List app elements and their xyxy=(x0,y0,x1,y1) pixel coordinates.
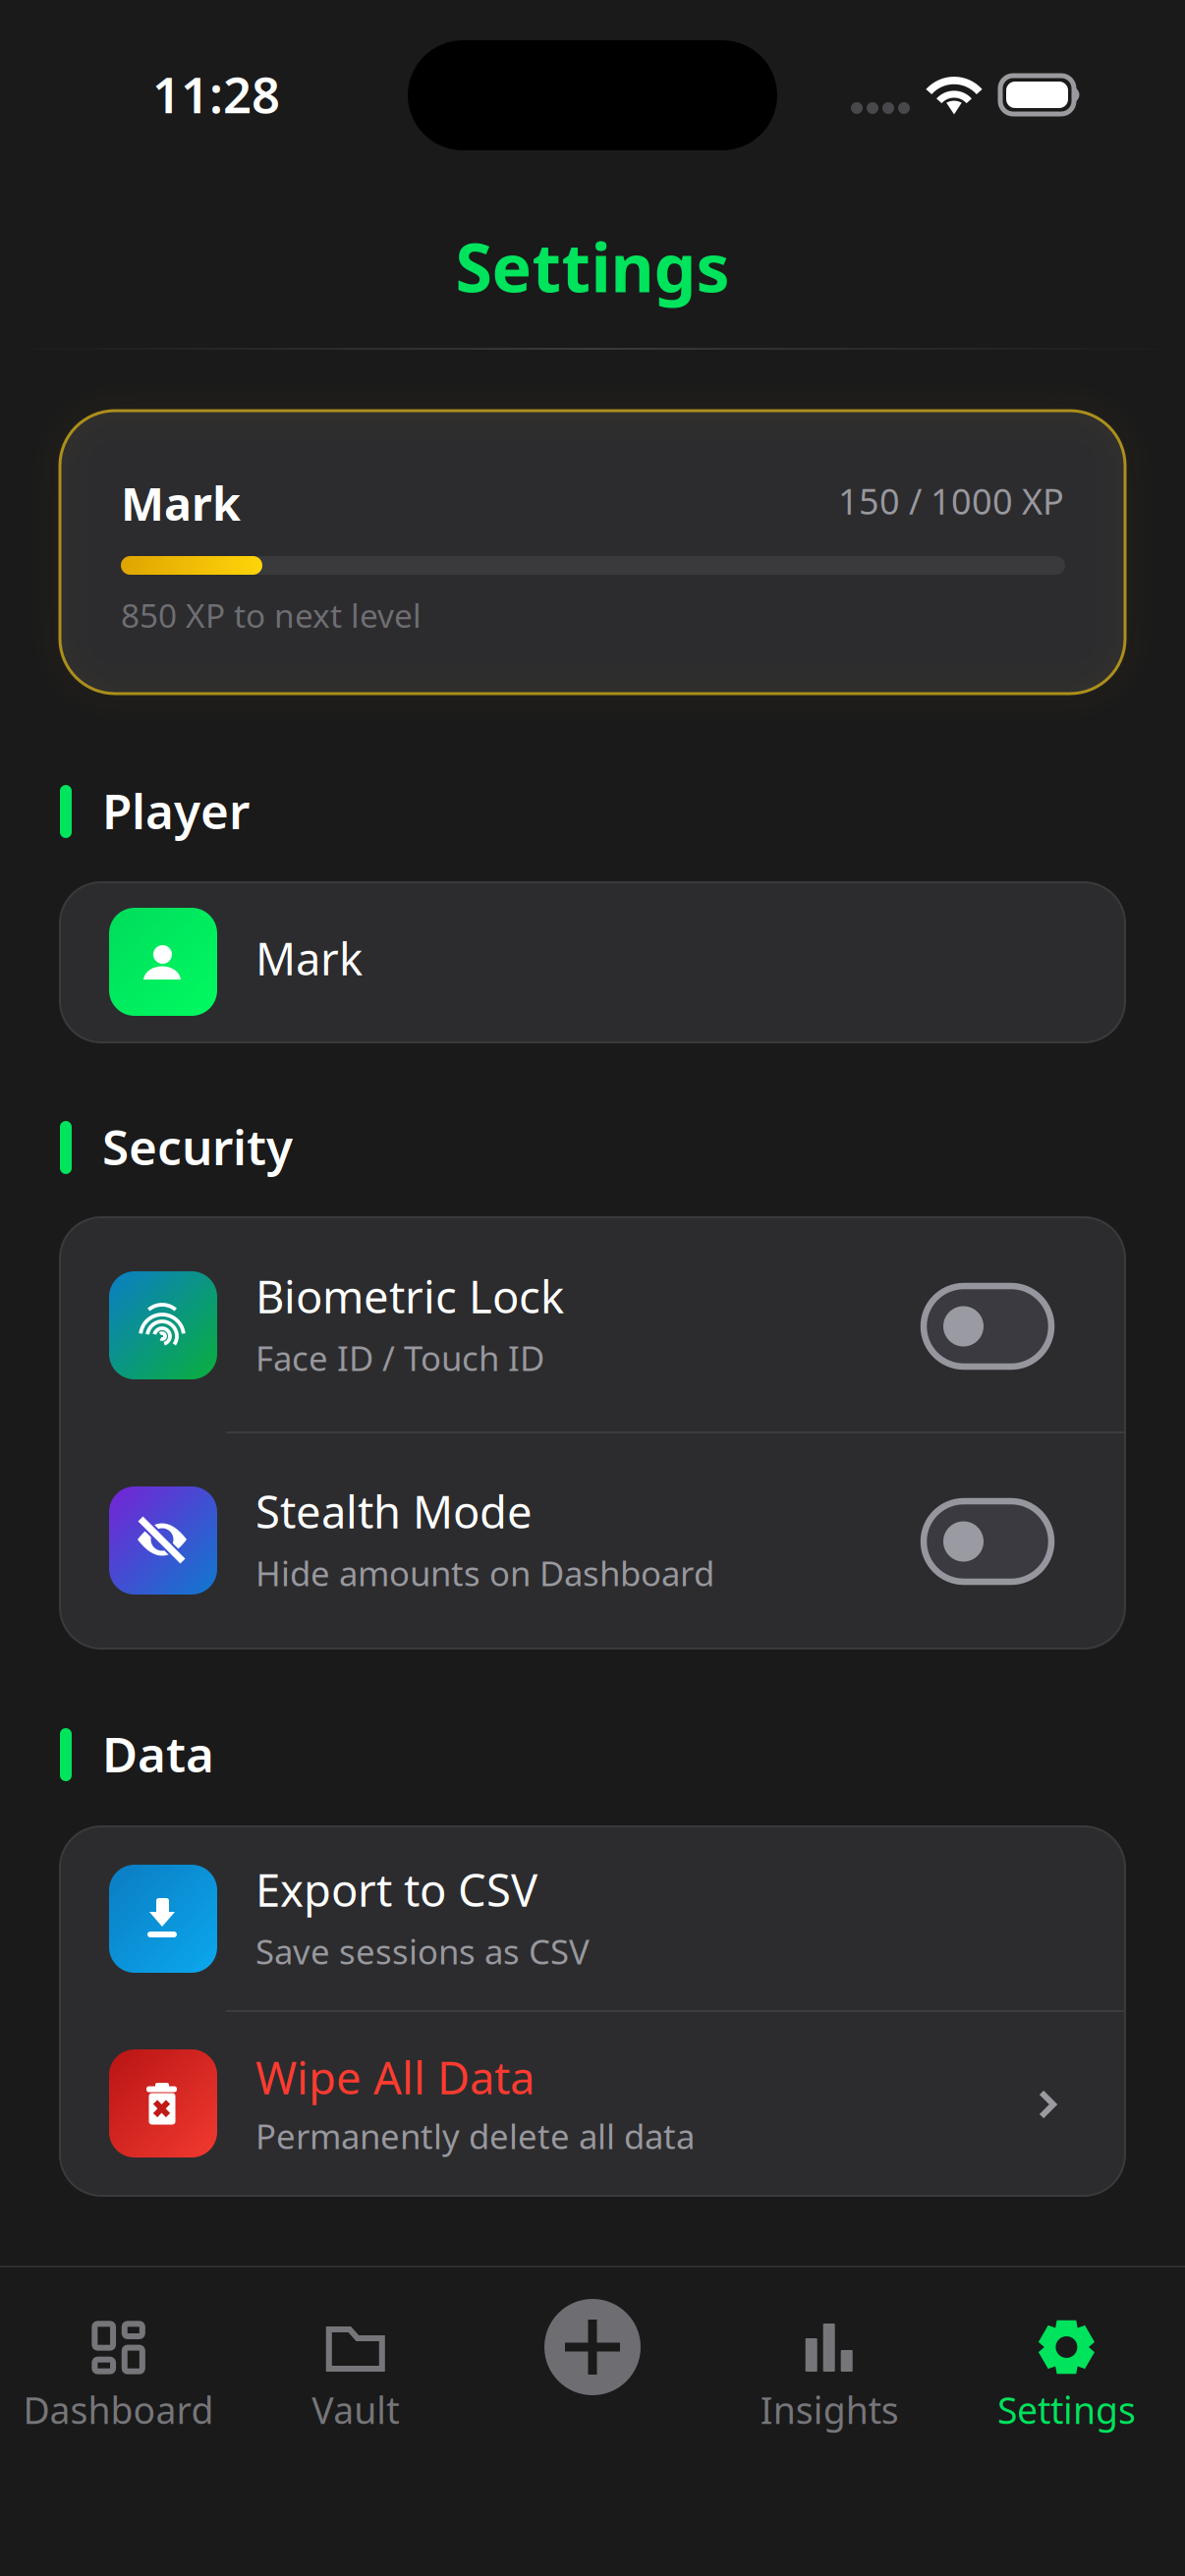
staticText: Insights xyxy=(760,2385,899,2434)
staticText: 11:28 xyxy=(152,61,280,127)
staticText: 850 XP to next level xyxy=(121,593,422,637)
staticText: Security xyxy=(102,1114,293,1178)
button[interactable]: Export to CSV xyxy=(60,1826,1125,2011)
staticText: Settings xyxy=(455,222,730,311)
button[interactable]: Settings xyxy=(948,2299,1185,2471)
button[interactable]: Biometric Lock xyxy=(60,1217,1125,1431)
staticText: Data xyxy=(102,1721,214,1786)
button[interactable]: Mark xyxy=(60,882,1125,1042)
button[interactable]: Stealth Mode xyxy=(60,1432,1125,1649)
button[interactable]: Dashboard xyxy=(0,2299,237,2471)
button[interactable]: Wipe All Data xyxy=(60,2011,1125,2196)
staticText: Settings xyxy=(997,2385,1136,2434)
staticText: Stealth Mode xyxy=(255,1482,533,1541)
staticText: Player xyxy=(102,778,250,842)
button[interactable]: Vault xyxy=(237,2299,474,2471)
staticText: Dashboard xyxy=(23,2385,214,2434)
staticText: Export to CSV xyxy=(255,1860,537,1919)
staticText: Mark xyxy=(121,473,241,533)
staticText: Hide amounts on Dashboard xyxy=(255,1550,714,1596)
staticText: Face ID / Touch ID xyxy=(255,1335,544,1380)
button[interactable]: Insights xyxy=(711,2299,948,2471)
staticText: Biometric Lock xyxy=(255,1266,564,1326)
button[interactable]: Add xyxy=(474,2299,711,2471)
staticText: Vault xyxy=(312,2385,399,2434)
staticText: Wipe All Data xyxy=(255,2047,535,2107)
staticText: Mark xyxy=(255,928,363,988)
staticText: Permanently delete all data xyxy=(255,2113,695,2158)
staticText: Save sessions as CSV xyxy=(255,1929,590,1974)
staticText: 150 / 1000 XP xyxy=(838,477,1064,524)
